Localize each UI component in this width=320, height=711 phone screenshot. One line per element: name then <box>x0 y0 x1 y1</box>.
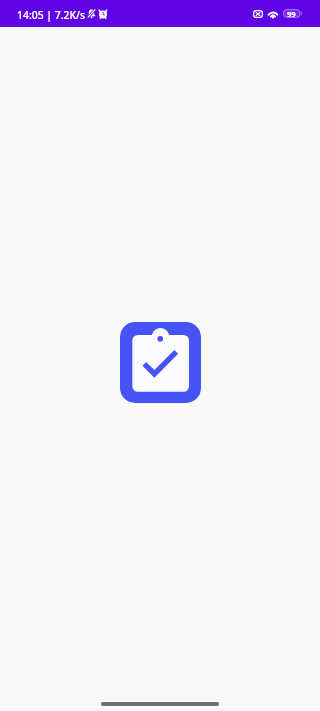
staticText: 99 <box>287 9 296 18</box>
staticText: 14:05 | 7.2K/s <box>17 8 86 22</box>
button[interactable]: Open TaskList <box>120 322 201 403</box>
other: App logo <box>120 322 201 403</box>
